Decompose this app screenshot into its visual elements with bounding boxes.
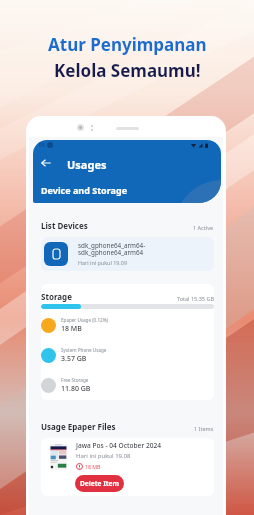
staticText: 3.57 GB bbox=[61, 354, 87, 364]
staticText: Atur Penyimpanan bbox=[48, 33, 207, 56]
button[interactable]: sdk_gphone64_arm64-sdk_gphone64_arm64 bbox=[41, 237, 214, 271]
staticText: Usages bbox=[67, 157, 107, 172]
staticText: Epaper Usage (0.12%) bbox=[61, 317, 108, 323]
button[interactable]: Back bbox=[38, 155, 53, 170]
staticText: Hari ini pukul 19.08 bbox=[76, 452, 131, 460]
staticText: List Devices bbox=[41, 220, 88, 231]
staticText: System Phone Usage bbox=[61, 347, 107, 353]
staticText: 18 MB bbox=[85, 463, 101, 470]
staticText: Jawa Pos - 04 October 2024 bbox=[76, 441, 161, 450]
staticText: Kelola Semaumu! bbox=[54, 59, 201, 82]
staticText: Total 15.35 GB bbox=[177, 295, 214, 302]
staticText: Hari ini pukul 19.09 bbox=[78, 259, 127, 266]
staticText: 1 Active bbox=[193, 224, 214, 231]
staticText: 11.80 GB bbox=[61, 384, 91, 394]
staticText: Storage bbox=[41, 291, 72, 302]
staticText: 09 bbox=[39, 142, 45, 149]
staticText: Delete Item bbox=[80, 479, 119, 488]
staticText: Usage Epaper Files bbox=[41, 421, 116, 432]
staticText: sdk_gphone64_arm64-sdk_gphone64_arm64 bbox=[78, 241, 208, 256]
staticText: Device and Storage bbox=[41, 184, 128, 196]
button[interactable]: Delete Item bbox=[75, 475, 124, 492]
staticText: 18 MB bbox=[61, 324, 82, 334]
staticText: 1 Items bbox=[194, 425, 214, 432]
staticText: Free Storage bbox=[61, 377, 89, 383]
